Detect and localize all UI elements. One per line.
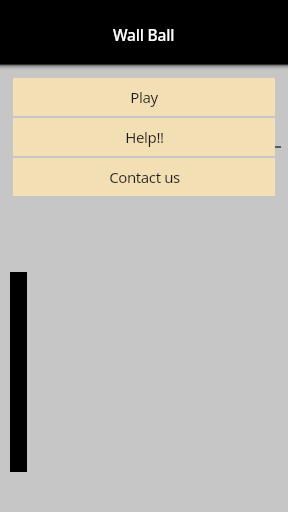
staticText: Help!! <box>125 127 164 147</box>
staticText: Contact us <box>109 167 180 187</box>
button[interactable]: Contact us <box>13 158 275 196</box>
button[interactable]: Play <box>13 78 275 116</box>
staticText: Play <box>130 87 158 107</box>
staticText: Wall Ball <box>113 24 175 45</box>
button[interactable]: Help!! <box>13 118 275 156</box>
